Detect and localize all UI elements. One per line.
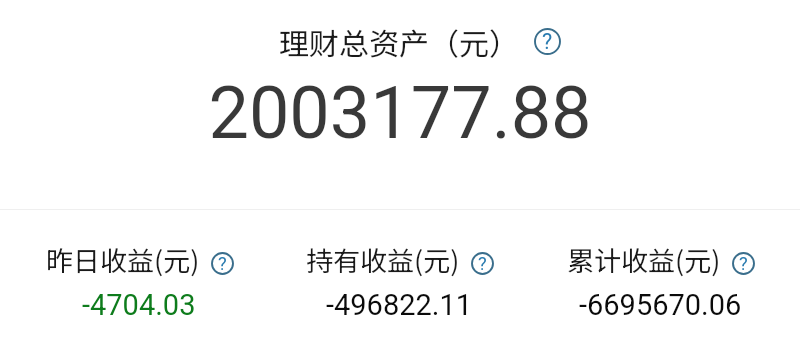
staticText: 昨日收益(元) <box>46 240 200 279</box>
staticText: 持有收益(元) <box>306 240 460 279</box>
button[interactable]: 持有收益(元) <box>269 240 530 322</box>
button[interactable]: Help about holding earnings <box>471 252 494 275</box>
button[interactable]: 累计收益(元) <box>530 240 791 322</box>
staticText: ? <box>542 29 553 54</box>
staticText: 2003177.88 <box>208 71 592 155</box>
staticText: -496822.11 <box>326 288 473 322</box>
button[interactable]: Help about total wealth assets <box>534 28 561 55</box>
staticText: ? <box>739 253 748 275</box>
button[interactable]: Help about yesterday's earnings <box>211 252 234 275</box>
button[interactable]: Help about cumulative earnings <box>732 252 755 275</box>
button[interactable]: 昨日收益(元) <box>9 240 269 322</box>
staticText: 累计收益(元) <box>567 240 721 279</box>
staticText: -6695670.06 <box>579 288 742 322</box>
staticText: ? <box>478 253 487 275</box>
staticText: 理财总资产（元） <box>279 20 519 63</box>
staticText: -4704.03 <box>82 288 196 322</box>
staticText: ? <box>218 253 227 275</box>
